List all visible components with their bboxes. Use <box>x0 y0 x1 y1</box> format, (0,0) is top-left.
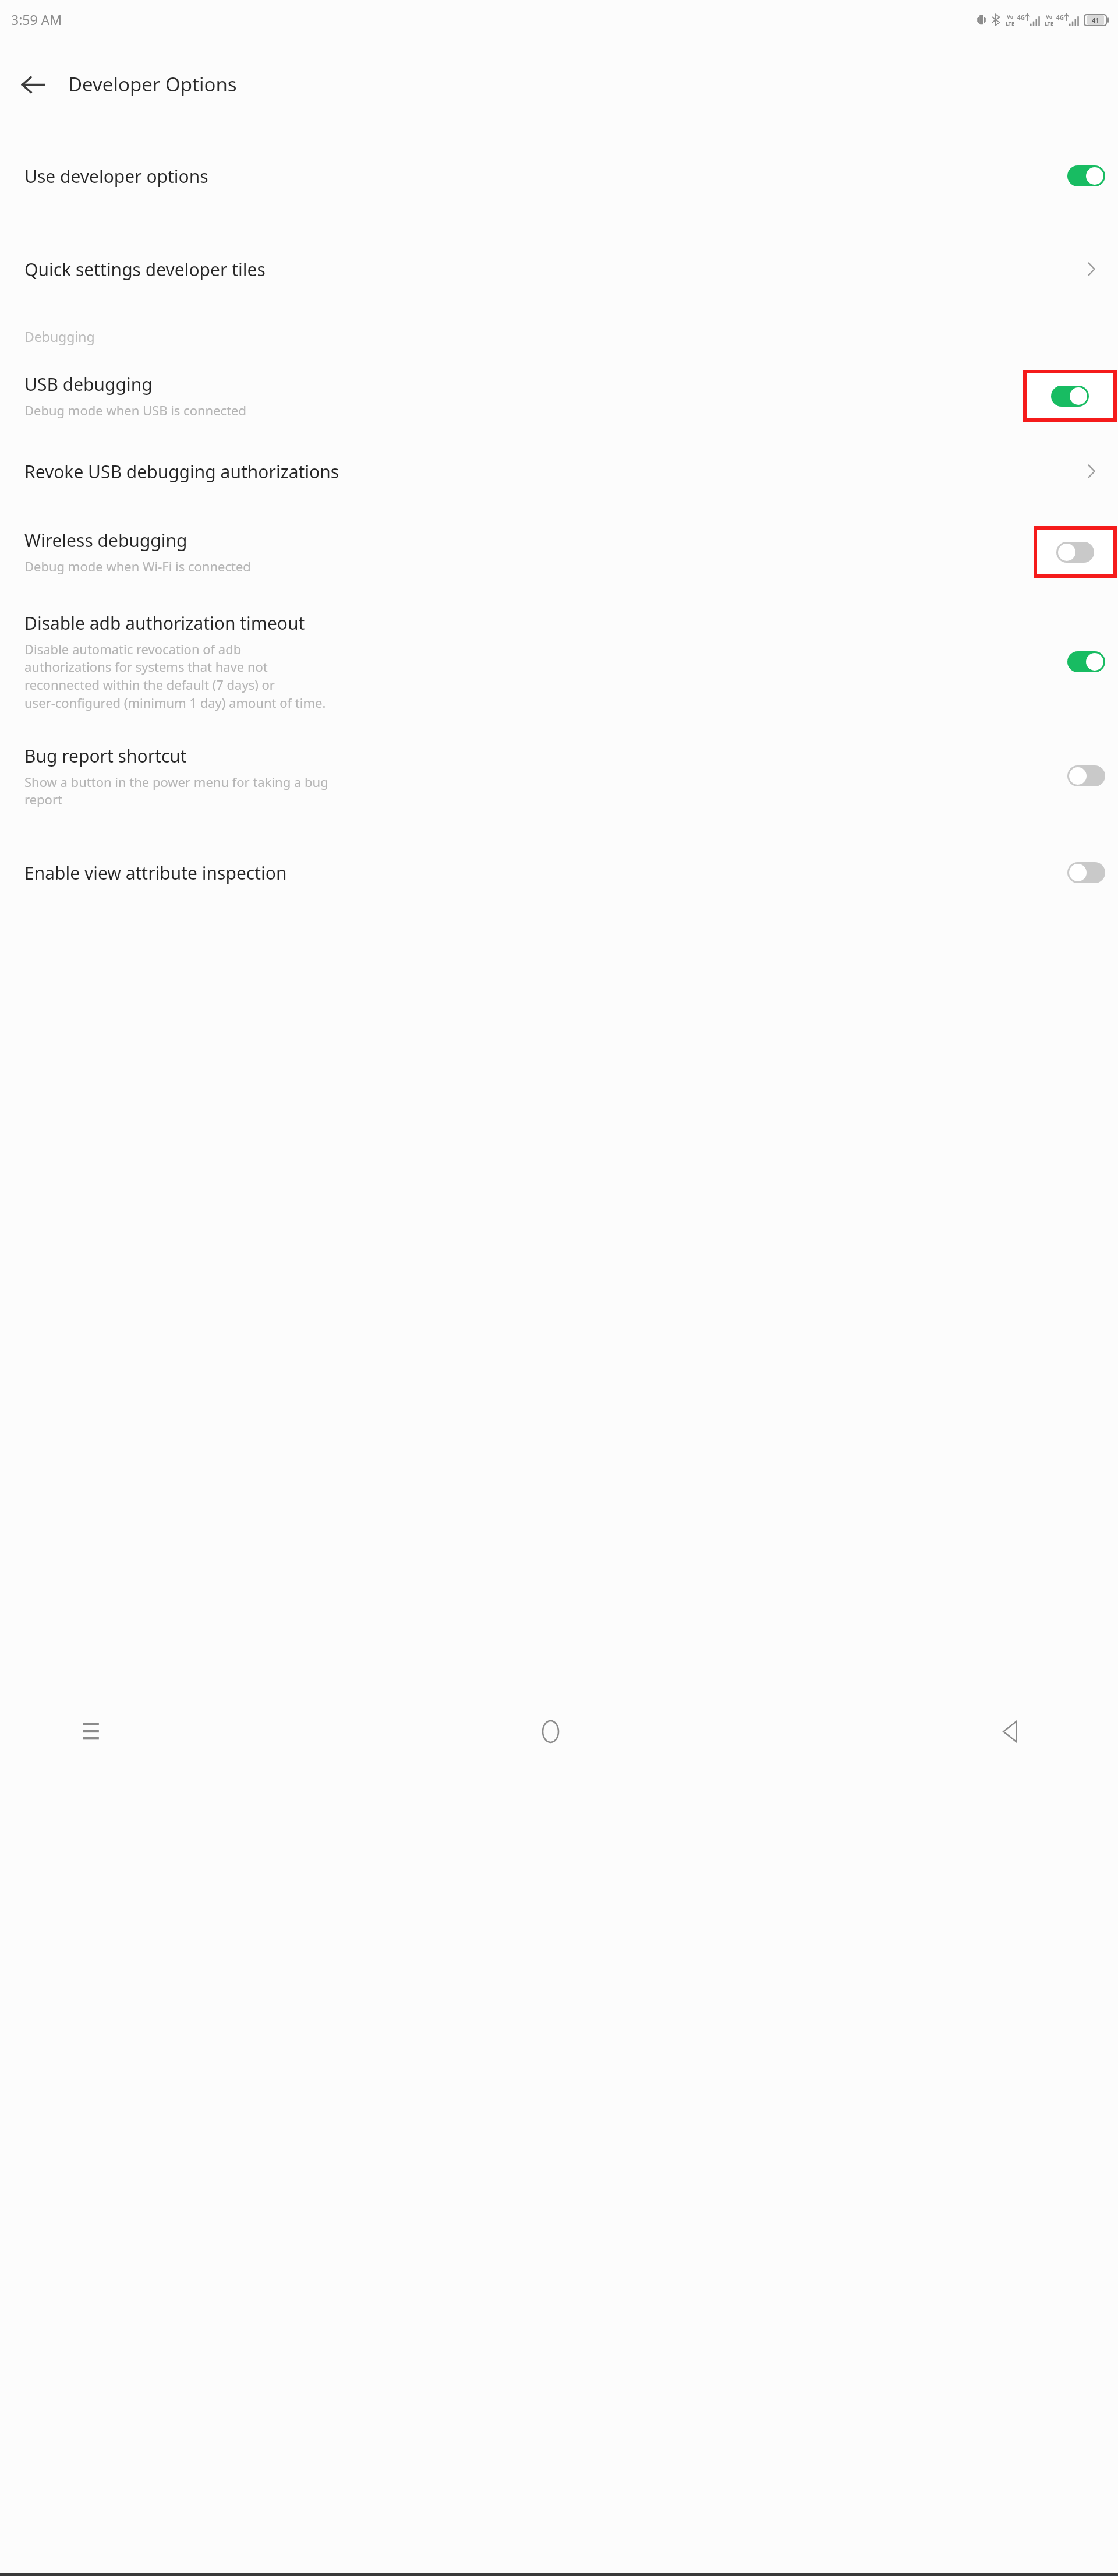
staticText: Disable adb authorization timeout <box>24 611 305 635</box>
button[interactable]: Open <box>1077 457 1105 485</box>
staticText: 3:59 AM <box>11 10 62 29</box>
staticText: Vo <box>1046 13 1053 20</box>
button[interactable]: Open <box>1077 255 1105 283</box>
button[interactable]: Use developer options <box>1067 165 1105 186</box>
button[interactable]: Back <box>983 1705 1036 1758</box>
staticText: Disable automatic revocation of adb auth… <box>24 640 326 712</box>
button[interactable]: Disable adb authorization timeout <box>1067 651 1105 672</box>
staticText: Wireless debugging <box>24 528 187 552</box>
button[interactable]: USB debugging <box>0 359 1118 432</box>
staticText: 4G <box>1017 13 1025 22</box>
staticText: Vo <box>1007 13 1014 20</box>
staticText: Use developer options <box>24 164 208 188</box>
staticText: Debug mode when USB is connected <box>24 401 247 419</box>
button[interactable]: Home <box>523 1705 577 1758</box>
button[interactable]: Disable adb authorization timeout <box>0 602 1118 721</box>
staticText: Debug mode when Wi-Fi is connected <box>24 557 251 575</box>
button[interactable]: Bug report shortcut <box>0 735 1118 817</box>
staticText: Show a button in the power menu for taki… <box>24 773 328 809</box>
button[interactable]: Enable view attribute inspection <box>0 844 1118 902</box>
button[interactable]: Back <box>12 64 53 105</box>
button[interactable]: Wireless debugging <box>1056 542 1094 563</box>
button[interactable]: Recents <box>64 1705 118 1758</box>
staticText: USB debugging <box>24 372 153 396</box>
staticText: Developer Options <box>68 71 237 97</box>
button[interactable]: Bug report shortcut <box>1067 765 1105 786</box>
button[interactable]: Wireless debugging <box>0 516 1118 588</box>
button[interactable]: Quick settings developer tiles <box>0 240 1118 298</box>
staticText: 41 <box>1092 16 1099 24</box>
staticText: LTE <box>1045 20 1054 27</box>
button[interactable]: Revoke USB debugging authorizations <box>0 443 1118 499</box>
staticText: LTE <box>1006 20 1015 27</box>
button[interactable]: Use developer options <box>0 147 1118 205</box>
button[interactable]: Enable view attribute inspection <box>1067 862 1105 883</box>
staticText: Revoke USB debugging authorizations <box>24 460 339 484</box>
staticText: Bug report shortcut <box>24 744 187 768</box>
staticText: Debugging <box>24 327 95 345</box>
staticText: Quick settings developer tiles <box>24 257 266 281</box>
button[interactable]: USB debugging <box>1051 386 1089 407</box>
staticText: Enable view attribute inspection <box>24 861 287 885</box>
staticText: 4G <box>1056 13 1064 22</box>
